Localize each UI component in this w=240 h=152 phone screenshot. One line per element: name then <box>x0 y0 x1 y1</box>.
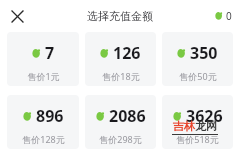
staticText: 选择充值金额 <box>87 9 153 23</box>
button[interactable]: 7 <box>7 32 79 86</box>
staticText: 3626 <box>186 105 223 127</box>
button[interactable]: 350 <box>162 32 233 86</box>
staticText: 吉林 <box>173 119 195 133</box>
staticText: 2086 <box>109 105 146 127</box>
staticText: 售价18元 <box>102 70 140 82</box>
staticText: 896 <box>36 105 64 127</box>
staticText: 0 <box>226 9 232 23</box>
button[interactable]: 896 <box>7 95 79 149</box>
staticText: 售价298元 <box>99 133 142 145</box>
button[interactable]: 3626 <box>162 95 233 149</box>
staticText: 126 <box>113 42 141 64</box>
staticText: 售价128元 <box>22 133 65 145</box>
staticText: 龙网 <box>195 119 217 133</box>
staticText: 售价1元 <box>27 70 60 82</box>
staticText: 售价518元 <box>176 133 219 145</box>
staticText: 售价50元 <box>179 70 217 82</box>
staticText: 350 <box>190 42 218 64</box>
button[interactable]: 关闭 <box>4 3 30 29</box>
button[interactable]: 2086 <box>85 95 156 149</box>
button[interactable]: 126 <box>85 32 156 86</box>
button[interactable]: 0 <box>215 9 232 23</box>
staticText: 7 <box>45 42 55 64</box>
